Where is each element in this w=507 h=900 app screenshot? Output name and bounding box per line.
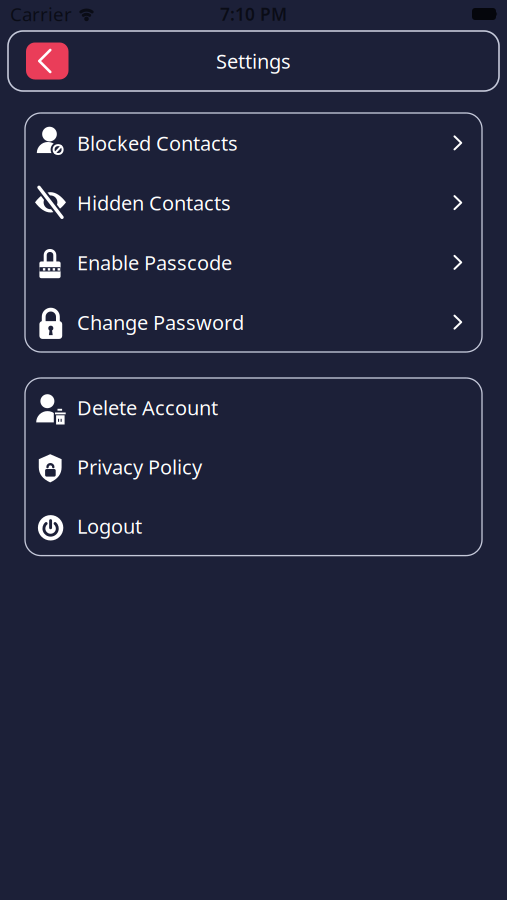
staticText: Settings	[216, 48, 291, 74]
button[interactable]: Blocked Contacts	[25, 113, 482, 173]
button[interactable]: Hidden Contacts	[25, 173, 482, 233]
staticText: 7:10 PM	[220, 2, 287, 25]
button[interactable]: Delete Account	[25, 378, 482, 437]
button[interactable]: Logout	[25, 496, 482, 556]
button[interactable]: Privacy Policy	[25, 437, 482, 496]
staticText: Delete Account	[77, 394, 218, 421]
staticText: Carrier	[10, 2, 72, 26]
staticText: Hidden Contacts	[77, 189, 231, 216]
button[interactable]: Back	[26, 42, 68, 79]
button[interactable]: Enable Passcode	[25, 232, 482, 292]
staticText: Change Password	[77, 309, 244, 335]
staticText: Privacy Policy	[77, 453, 202, 480]
button[interactable]: Change Password	[25, 292, 482, 352]
staticText: Enable Passcode	[77, 249, 232, 276]
staticText: Logout	[77, 513, 142, 539]
staticText: Blocked Contacts	[77, 130, 238, 156]
